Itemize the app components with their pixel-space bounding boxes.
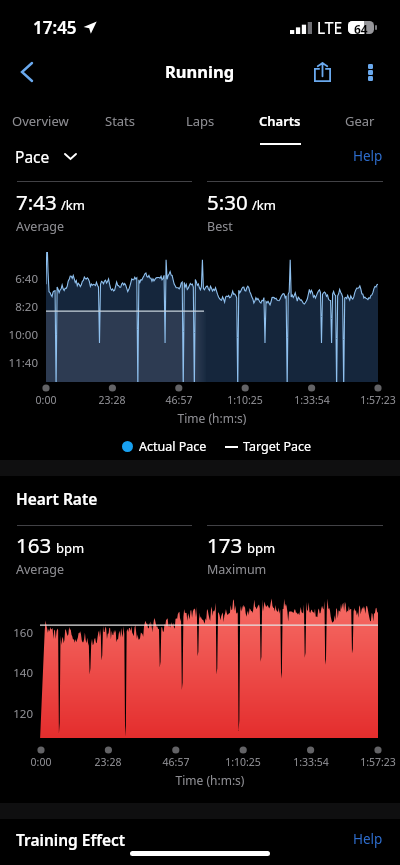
staticText: Maximum bbox=[207, 561, 267, 578]
staticText: LTE bbox=[317, 17, 343, 38]
staticText: Average bbox=[16, 561, 65, 578]
staticText: Stats bbox=[105, 112, 136, 130]
staticText: 163 bbox=[16, 531, 52, 559]
staticText: 120 bbox=[0, 706, 33, 722]
staticText: Running bbox=[165, 60, 235, 82]
staticText: 11:40 bbox=[0, 355, 38, 371]
staticText: 10:00 bbox=[0, 327, 38, 343]
staticText: Help bbox=[353, 147, 383, 165]
staticText: Gear bbox=[345, 112, 375, 130]
staticText: 173 bbox=[207, 531, 243, 559]
staticText: bpm bbox=[56, 539, 85, 557]
staticText: Best bbox=[207, 218, 233, 235]
staticText: Laps bbox=[186, 112, 215, 130]
button[interactable]: Stats bbox=[80, 103, 160, 145]
staticText: 0:00 bbox=[11, 755, 71, 769]
staticText: /km bbox=[252, 196, 276, 214]
button[interactable]: Pace bbox=[15, 146, 77, 167]
staticText: 46:57 bbox=[149, 393, 209, 407]
staticText: Time (h:m:s) bbox=[152, 410, 272, 426]
staticText: 1:33:54 bbox=[282, 393, 342, 407]
staticText: 1:10:25 bbox=[215, 393, 275, 407]
staticText: 1:57:23 bbox=[348, 755, 400, 769]
staticText: 1:33:54 bbox=[281, 755, 341, 769]
staticText: 0:00 bbox=[16, 393, 76, 407]
staticText: 1:57:23 bbox=[348, 393, 400, 407]
button[interactable]: Charts bbox=[240, 103, 320, 145]
staticText: Time (h:m:s) bbox=[150, 772, 270, 788]
staticText: 46:57 bbox=[146, 755, 206, 769]
staticText: 8:20 bbox=[0, 299, 38, 315]
staticText: Target Pace bbox=[243, 438, 312, 455]
button[interactable]: Help bbox=[353, 147, 383, 165]
staticText: bpm bbox=[247, 539, 276, 557]
button[interactable]: Share bbox=[300, 52, 344, 92]
staticText: Actual Pace bbox=[139, 438, 207, 455]
staticText: 23:28 bbox=[82, 393, 142, 407]
staticText: 5:30 bbox=[207, 188, 248, 216]
staticText: Heart Rate bbox=[16, 488, 98, 508]
button[interactable]: Overview bbox=[0, 103, 80, 145]
button[interactable]: Help bbox=[353, 830, 383, 848]
button[interactable]: More options bbox=[353, 52, 387, 92]
staticText: Training Effect bbox=[16, 829, 126, 850]
staticText: 1:10:25 bbox=[213, 755, 273, 769]
staticText: Overview bbox=[12, 112, 69, 130]
staticText: 160 bbox=[0, 625, 33, 641]
staticText: 6:40 bbox=[0, 271, 38, 287]
staticText: 17:45 bbox=[33, 16, 77, 39]
staticText: Charts bbox=[259, 112, 301, 130]
staticText: Average bbox=[16, 218, 65, 235]
button[interactable]: Back bbox=[7, 52, 47, 92]
staticText: 23:28 bbox=[78, 755, 138, 769]
button[interactable]: Laps bbox=[160, 103, 240, 145]
button[interactable]: Gear bbox=[320, 103, 400, 145]
staticText: Help bbox=[353, 830, 383, 848]
staticText: 7:43 bbox=[16, 188, 57, 216]
staticText: Pace bbox=[15, 146, 50, 167]
staticText: /km bbox=[61, 196, 85, 214]
staticText: 140 bbox=[0, 665, 33, 681]
staticText: 64 bbox=[354, 21, 368, 34]
